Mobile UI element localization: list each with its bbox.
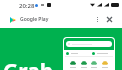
button[interactable]: Close bbox=[103, 13, 115, 25]
button[interactable]: Balance bbox=[92, 50, 114, 56]
button[interactable]: Service bbox=[102, 60, 108, 68]
button[interactable]: Google Play bbox=[10, 16, 49, 23]
button[interactable]: Service bbox=[91, 60, 97, 68]
staticText: 20:28 bbox=[19, 2, 35, 10]
staticText: Google Play bbox=[20, 16, 49, 23]
button[interactable]: Balance bbox=[66, 50, 89, 56]
button[interactable]: Search bbox=[66, 41, 112, 47]
staticText: Grab bbox=[3, 57, 54, 70]
button[interactable]: More options bbox=[91, 13, 103, 25]
button[interactable]: Service bbox=[70, 60, 76, 68]
button[interactable]: Service bbox=[81, 60, 87, 68]
